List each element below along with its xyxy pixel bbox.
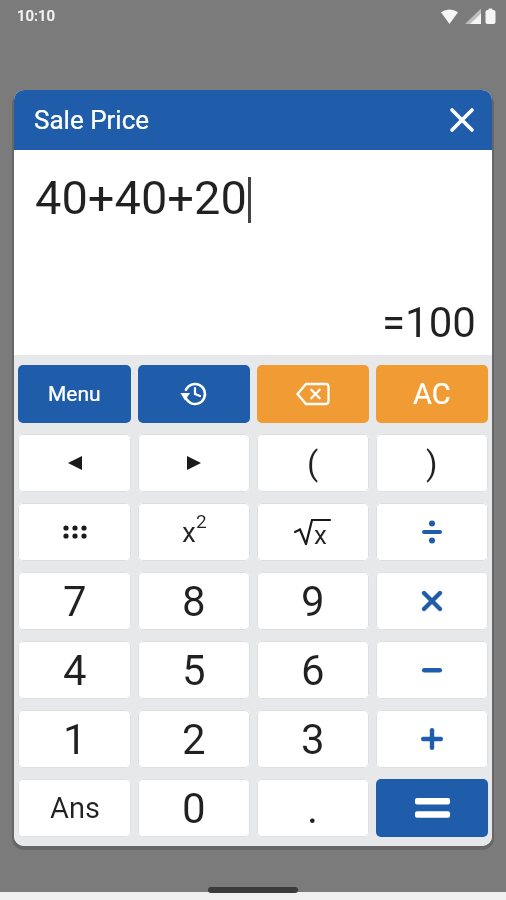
button[interactable] xyxy=(138,365,250,423)
staticText: 6 xyxy=(301,646,325,695)
staticText: Menu xyxy=(48,382,101,407)
button[interactable] xyxy=(376,641,488,699)
staticText: Sale Price xyxy=(34,105,150,135)
button[interactable]: 8 xyxy=(138,572,250,630)
button[interactable] xyxy=(257,365,369,423)
button[interactable]: 3 xyxy=(257,710,369,768)
staticText: 3 xyxy=(301,715,325,764)
button[interactable]: 4 xyxy=(18,641,131,699)
button[interactable]: 1 xyxy=(18,710,131,768)
button[interactable] xyxy=(18,434,131,492)
staticText: 1 xyxy=(63,715,87,764)
button[interactable]: 9 xyxy=(257,572,369,630)
staticText: 2 xyxy=(182,715,206,764)
button[interactable]: 7 xyxy=(18,572,131,630)
button[interactable] xyxy=(376,572,488,630)
button[interactable]: x xyxy=(138,503,250,561)
button[interactable]: Menu xyxy=(18,365,131,423)
button[interactable] xyxy=(376,779,488,837)
staticText: 4 xyxy=(63,646,87,695)
button[interactable] xyxy=(376,710,488,768)
button[interactable] xyxy=(432,90,492,150)
staticText: 8 xyxy=(182,577,206,626)
staticText: AC xyxy=(413,377,451,411)
button[interactable]: 6 xyxy=(257,641,369,699)
staticText: ) xyxy=(426,444,438,483)
button[interactable]: AC xyxy=(376,365,488,423)
staticText: . xyxy=(307,784,319,833)
button[interactable]: 5 xyxy=(138,641,250,699)
staticText: x xyxy=(182,516,196,549)
staticText: ( xyxy=(307,444,319,483)
button[interactable]: ) xyxy=(376,434,488,492)
button[interactable]: . xyxy=(257,779,369,837)
button[interactable]: 0 xyxy=(138,779,250,837)
staticText: 5 xyxy=(182,646,206,695)
staticText: 40+40+20 xyxy=(35,170,247,225)
button[interactable] xyxy=(18,503,131,561)
button[interactable] xyxy=(376,503,488,561)
button[interactable]: Ans xyxy=(18,779,131,837)
button[interactable]: x xyxy=(257,503,369,561)
staticText: x xyxy=(314,520,327,550)
staticText: 2 xyxy=(196,510,207,532)
staticText: 9 xyxy=(301,577,325,626)
staticText: 7 xyxy=(63,577,87,626)
staticText: Ans xyxy=(50,791,100,825)
button[interactable]: 2 xyxy=(138,710,250,768)
staticText: 0 xyxy=(182,784,206,833)
button[interactable]: ( xyxy=(257,434,369,492)
staticText: =100 xyxy=(382,298,476,347)
staticText: 10:10 xyxy=(17,7,56,25)
button[interactable] xyxy=(138,434,250,492)
